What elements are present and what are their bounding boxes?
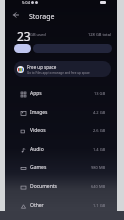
staticText: Other bbox=[30, 202, 44, 209]
staticText: 640 MB bbox=[91, 184, 106, 189]
staticText: 1.4 GB bbox=[93, 147, 106, 152]
button[interactable]: Apps bbox=[5, 84, 117, 103]
button[interactable]: Images bbox=[5, 103, 117, 122]
button[interactable]: Audio bbox=[5, 140, 117, 159]
staticText: 4.2 GB bbox=[93, 110, 106, 115]
button[interactable]: Documents bbox=[5, 177, 117, 196]
staticText: Games bbox=[30, 164, 47, 171]
button[interactable]: Other bbox=[5, 196, 117, 215]
staticText: 23 bbox=[17, 28, 31, 44]
staticText: Audio bbox=[30, 146, 44, 153]
button[interactable]: Games bbox=[5, 158, 117, 177]
button[interactable]: Back bbox=[9, 8, 23, 22]
staticText: Free up space bbox=[27, 64, 57, 70]
staticText: Images bbox=[30, 109, 48, 116]
staticText: 128 GB total bbox=[88, 32, 112, 37]
staticText: 2.6 GB bbox=[93, 128, 106, 133]
staticText: 5:04 bbox=[22, 0, 30, 5]
staticText: Apps bbox=[30, 90, 42, 97]
staticText: GB used bbox=[30, 32, 46, 37]
staticText: Videos bbox=[30, 127, 46, 134]
button[interactable]: Videos bbox=[5, 121, 117, 140]
staticText: 13 GB bbox=[94, 91, 106, 96]
staticText: 980 MB bbox=[91, 165, 106, 170]
staticText: Documents bbox=[30, 183, 57, 190]
staticText: Go to Files app to manage and free up sp… bbox=[27, 71, 90, 75]
button[interactable]: Free up space bbox=[14, 61, 111, 77]
staticText: 1.1 GB bbox=[93, 203, 106, 208]
staticText: Storage bbox=[29, 12, 55, 22]
